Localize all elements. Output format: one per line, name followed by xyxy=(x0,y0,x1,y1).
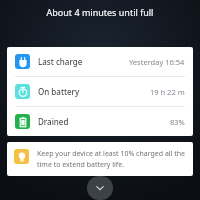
staticText: Drained xyxy=(38,116,69,127)
button[interactable]: Drained xyxy=(7,107,193,136)
staticText: 19 h 22 m xyxy=(150,87,185,97)
button[interactable]: On battery xyxy=(7,77,193,106)
button[interactable]: Keep your device at least 10% charged al… xyxy=(7,142,193,176)
staticText: 83% xyxy=(170,117,185,127)
staticText: Yesterday 16:54 xyxy=(129,57,185,67)
button[interactable]: Last charge xyxy=(7,47,193,76)
staticText: Last charge xyxy=(38,56,83,67)
button[interactable]: Collapse xyxy=(87,176,113,200)
staticText: About 4 minutes until full xyxy=(0,6,200,18)
staticText: Keep your device at least 10% charged al… xyxy=(37,149,186,169)
staticText: On battery xyxy=(38,86,80,97)
